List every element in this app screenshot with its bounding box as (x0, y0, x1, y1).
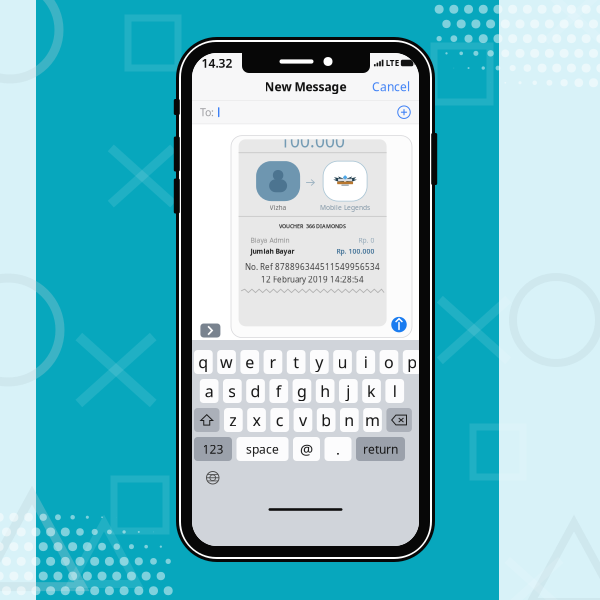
staticText: Vizha (270, 203, 287, 212)
staticText: 100.000 (280, 129, 345, 152)
staticText: 12 February 2019 14:28:54 (261, 274, 364, 285)
button[interactable]: i (356, 350, 375, 374)
button[interactable]: space (236, 437, 288, 461)
staticText: d (250, 380, 260, 402)
staticText: space (246, 441, 279, 457)
staticText: Rp. 100.000 (337, 247, 375, 256)
button[interactable]: Delete (386, 408, 412, 432)
button[interactable]: Add contact (397, 105, 411, 119)
staticText: r (269, 351, 276, 373)
button[interactable]: q (194, 350, 213, 374)
staticText: Cancel (372, 78, 410, 94)
button[interactable]: p (403, 350, 421, 374)
button[interactable]: x (247, 408, 266, 432)
staticText: . (336, 439, 340, 459)
staticText: m (365, 409, 380, 431)
button[interactable]: App drawer (200, 323, 220, 337)
staticText: v (299, 409, 307, 431)
staticText: p (407, 351, 417, 373)
staticText: To: (200, 105, 214, 119)
button[interactable]: z (224, 408, 243, 432)
button[interactable]: Send (391, 317, 407, 333)
button[interactable]: Change keyboard (206, 471, 219, 484)
button[interactable]: s (223, 379, 242, 403)
button[interactable]: w (217, 350, 236, 374)
staticText: return (363, 441, 398, 457)
staticText: n (344, 409, 354, 431)
button[interactable]: b (317, 408, 335, 432)
staticText: u (338, 351, 348, 373)
staticText: Mobile Legends (320, 203, 370, 212)
staticText: o (384, 351, 394, 373)
staticText: h (320, 380, 330, 402)
staticText: No. Ref 878896344511549956534 (245, 261, 380, 272)
staticText: a (205, 380, 214, 402)
staticText: x (252, 409, 260, 431)
button[interactable]: g (293, 379, 311, 403)
staticText: y (315, 351, 323, 373)
staticText: @ (300, 439, 313, 459)
button[interactable]: e (240, 350, 259, 374)
staticText: Jumlah Bayar (251, 247, 295, 256)
staticText: l (393, 380, 397, 402)
button[interactable]: return (356, 437, 405, 461)
button[interactable]: j (339, 379, 358, 403)
staticText: Biaya Admin (251, 236, 290, 245)
button[interactable]: Shift (194, 408, 219, 432)
staticText: c (276, 409, 284, 431)
staticText: e (245, 351, 254, 373)
button[interactable]: 123 (194, 437, 232, 461)
button[interactable]: u (333, 350, 352, 374)
button[interactable]: v (294, 408, 312, 432)
button[interactable]: o (380, 350, 398, 374)
button[interactable]: d (246, 379, 265, 403)
staticText: Rp. 0 (359, 236, 375, 245)
button[interactable]: m (363, 408, 382, 432)
staticText: 14.32 (201, 55, 232, 71)
button[interactable]: k (362, 379, 381, 403)
staticText: z (229, 409, 237, 431)
staticText: t (293, 351, 299, 373)
button[interactable]: n (340, 408, 359, 432)
button[interactable]: . (324, 437, 351, 461)
staticText: i (364, 351, 368, 373)
staticText: 123 (202, 441, 223, 457)
staticText: w (220, 351, 233, 373)
staticText: LTE (386, 58, 399, 68)
staticText: VOUCHER 366 DIAMONDS (279, 223, 346, 230)
staticText: q (198, 351, 208, 373)
button[interactable]: l (385, 379, 404, 403)
button[interactable]: a (200, 379, 218, 403)
staticText: New Message (264, 78, 346, 94)
staticText: k (367, 380, 376, 402)
button[interactable]: y (310, 350, 329, 374)
button[interactable]: h (316, 379, 334, 403)
staticText: f (276, 380, 282, 402)
staticText: j (346, 380, 350, 402)
button[interactable]: @ (293, 437, 320, 461)
staticText: b (321, 409, 331, 431)
button[interactable]: Cancel (372, 73, 419, 100)
button[interactable]: r (264, 350, 282, 374)
button[interactable]: f (269, 379, 288, 403)
button[interactable]: c (270, 408, 289, 432)
staticText: s (228, 380, 236, 402)
staticText: g (297, 380, 307, 402)
button[interactable]: t (287, 350, 305, 374)
